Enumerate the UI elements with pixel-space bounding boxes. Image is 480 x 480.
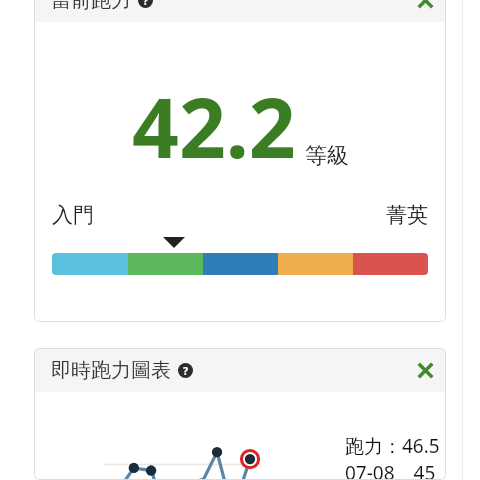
staticText: ?: [143, 0, 149, 8]
staticText: 即時跑力圖表: [51, 358, 171, 383]
staticText: ?: [183, 363, 189, 378]
staticText: 菁英: [386, 202, 428, 228]
button[interactable]: Help: [178, 363, 193, 378]
button[interactable]: Close: [412, 0, 438, 13]
staticText: 42.2: [132, 70, 296, 182]
button[interactable]: Help: [138, 0, 153, 8]
staticText: 入門: [52, 202, 94, 228]
staticText: 跑力：46.5: [345, 433, 440, 459]
staticText: 等級: [305, 142, 349, 170]
staticText: 07-08 45: [345, 460, 436, 480]
staticText: 當前跑力: [51, 0, 131, 13]
button[interactable]: [52, 253, 428, 275]
button[interactable]: Close: [412, 357, 438, 383]
